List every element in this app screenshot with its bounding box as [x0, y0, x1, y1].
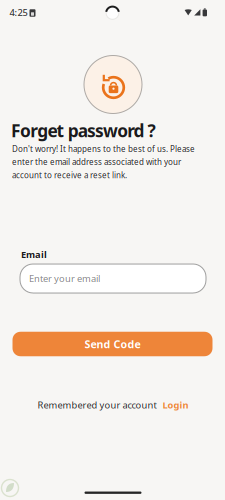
staticText: Send Code — [84, 337, 140, 351]
staticText: enter the email address associated with … — [12, 157, 181, 167]
button[interactable]: Login — [162, 399, 188, 411]
staticText: Remembered your account — [37, 399, 156, 411]
staticText: Forget password ? — [11, 119, 156, 142]
staticText: account to receive a reset link. — [12, 170, 127, 180]
staticText: Don't worry! It happens to the best of u… — [12, 144, 195, 154]
staticText: Email — [21, 248, 47, 261]
button[interactable]: Email address — [20, 264, 206, 293]
staticText: Enter your email — [29, 272, 100, 285]
staticText: 4:25 — [9, 6, 27, 19]
staticText: Login — [162, 399, 188, 411]
button[interactable]: Send Code — [12, 332, 212, 356]
